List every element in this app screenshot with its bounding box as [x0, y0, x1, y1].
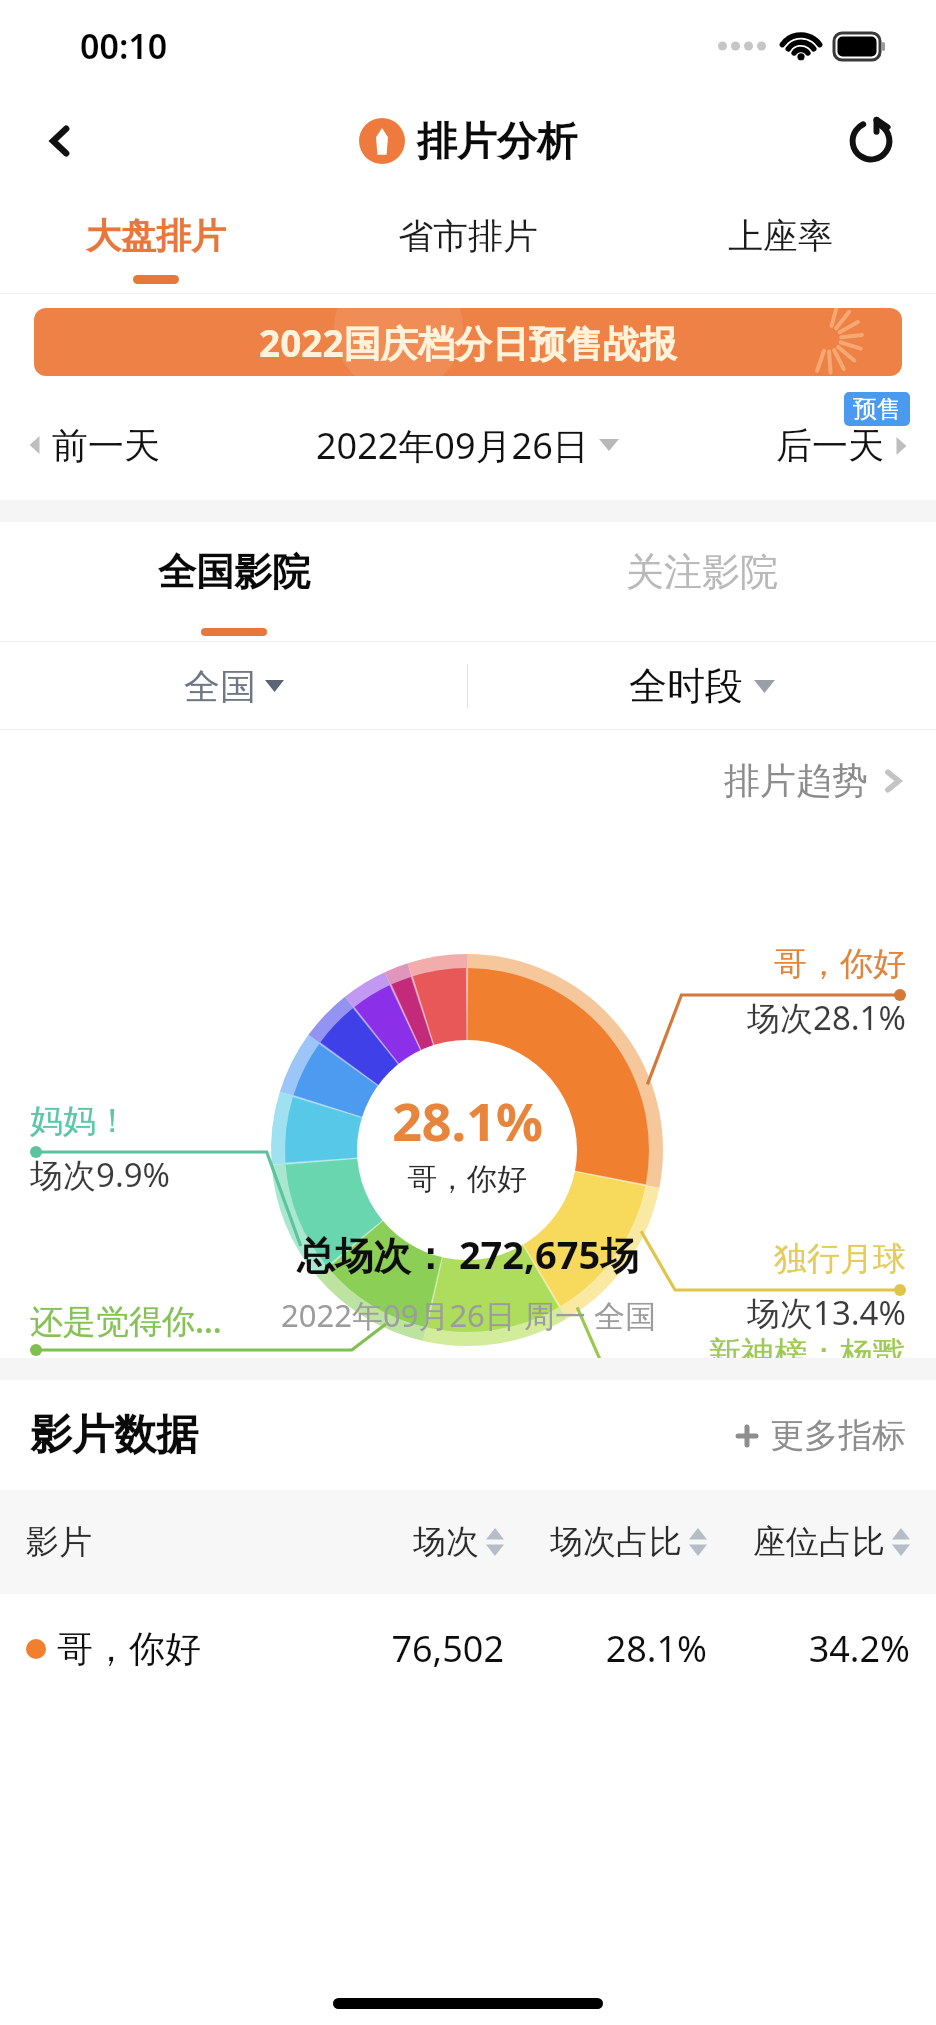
staticText: 预售: [853, 394, 901, 424]
button[interactable]: 全国影院: [0, 522, 468, 642]
staticText: 场次: [413, 1521, 479, 1563]
staticText: 前一天: [52, 423, 160, 468]
button[interactable]: 2022年09月26日: [278, 390, 657, 500]
staticText: 省市排片: [398, 214, 538, 258]
staticText: 上座率: [728, 214, 833, 258]
staticText: 场次占比: [550, 1521, 682, 1563]
button[interactable]: 排片分析: [359, 116, 577, 166]
staticText: 妈妈！: [30, 1100, 129, 1142]
staticText: 影片数据: [30, 1409, 198, 1462]
button[interactable]: 场次占比: [504, 1521, 707, 1563]
button[interactable]: 排片趋势: [724, 758, 906, 803]
button[interactable]: 哥，你好: [0, 1594, 936, 1702]
staticText: 影片: [26, 1521, 301, 1563]
staticText: 场次28.1%: [747, 995, 906, 1040]
button[interactable]: 场次: [301, 1521, 504, 1563]
staticText: 2022年09月26日 周一 全国: [281, 1294, 656, 1336]
button[interactable]: 关注影院: [468, 522, 936, 642]
button[interactable]: 上座率: [624, 190, 936, 294]
button[interactable]: 大盘排片: [0, 190, 312, 294]
staticText: 关注影院: [626, 548, 778, 596]
staticText: 76,502: [301, 1624, 504, 1673]
staticText: 新神榜：杨戬: [708, 1333, 906, 1375]
staticText: 场次12.1%: [747, 1385, 906, 1430]
button[interactable]: 全时段: [468, 642, 936, 730]
staticText: 00:10: [80, 23, 168, 69]
staticText: 28.1%: [392, 1085, 543, 1156]
staticText: 还是觉得你…: [30, 1298, 222, 1343]
staticText: 独行月球: [774, 1238, 906, 1280]
button[interactable]: 省市排片: [312, 190, 624, 294]
button[interactable]: Back: [30, 111, 90, 171]
staticText: 场次10.3%: [30, 1353, 189, 1398]
staticText: 大盘排片: [86, 214, 226, 258]
staticText: 更多指标: [770, 1414, 906, 1457]
button[interactable]: Share: [840, 110, 902, 172]
staticText: 座位占比: [753, 1521, 885, 1563]
staticText: 场次13.4%: [747, 1290, 906, 1335]
staticText: 后一天: [776, 423, 884, 468]
staticText: 场次9.9%: [30, 1152, 171, 1197]
button[interactable]: 座位占比: [707, 1521, 910, 1563]
staticText: 哥，你好: [774, 943, 906, 985]
staticText: 全国影院: [158, 548, 310, 596]
staticText: 2022年09月26日: [316, 421, 589, 470]
staticText: 哥，你好: [57, 1626, 201, 1671]
button[interactable]: 全国: [0, 642, 467, 730]
staticText: 2022国庆档分日预售战报: [259, 317, 677, 368]
staticText: 全国: [184, 664, 256, 709]
staticText: 全时段: [629, 662, 743, 710]
staticText: 排片趋势: [724, 758, 868, 803]
staticText: 排片分析: [417, 116, 577, 166]
staticText: 哥，你好: [407, 1160, 527, 1198]
staticText: 34.2%: [707, 1624, 910, 1673]
button[interactable]: 2022国庆档分日预售战报: [34, 308, 902, 376]
button[interactable]: 后一天: [657, 390, 910, 500]
button[interactable]: 前一天: [26, 390, 278, 500]
staticText: 总场次： 272,675场: [297, 1228, 639, 1280]
button[interactable]: 更多指标: [734, 1414, 906, 1457]
staticText: 28.1%: [504, 1624, 707, 1673]
